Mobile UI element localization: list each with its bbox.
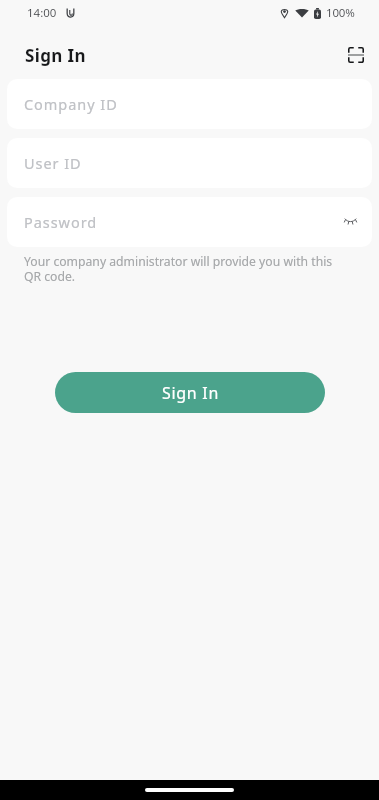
button[interactable]: User ID [7,138,372,188]
staticText: 100% [326,5,355,21]
staticText: Company ID [24,94,118,114]
staticText: Your company administrator will provide … [24,253,337,284]
staticText: Password [24,212,98,232]
staticText: 14:00 [27,5,57,21]
staticText: User ID [24,153,82,173]
staticText: Sign In [25,44,86,67]
button[interactable]: Scan QR code [339,38,373,72]
other: Show password [344,214,357,227]
button[interactable]: Sign In [55,372,325,413]
button[interactable]: Password [7,197,372,247]
button[interactable]: Company ID [7,79,372,129]
staticText: Sign In [162,382,220,404]
